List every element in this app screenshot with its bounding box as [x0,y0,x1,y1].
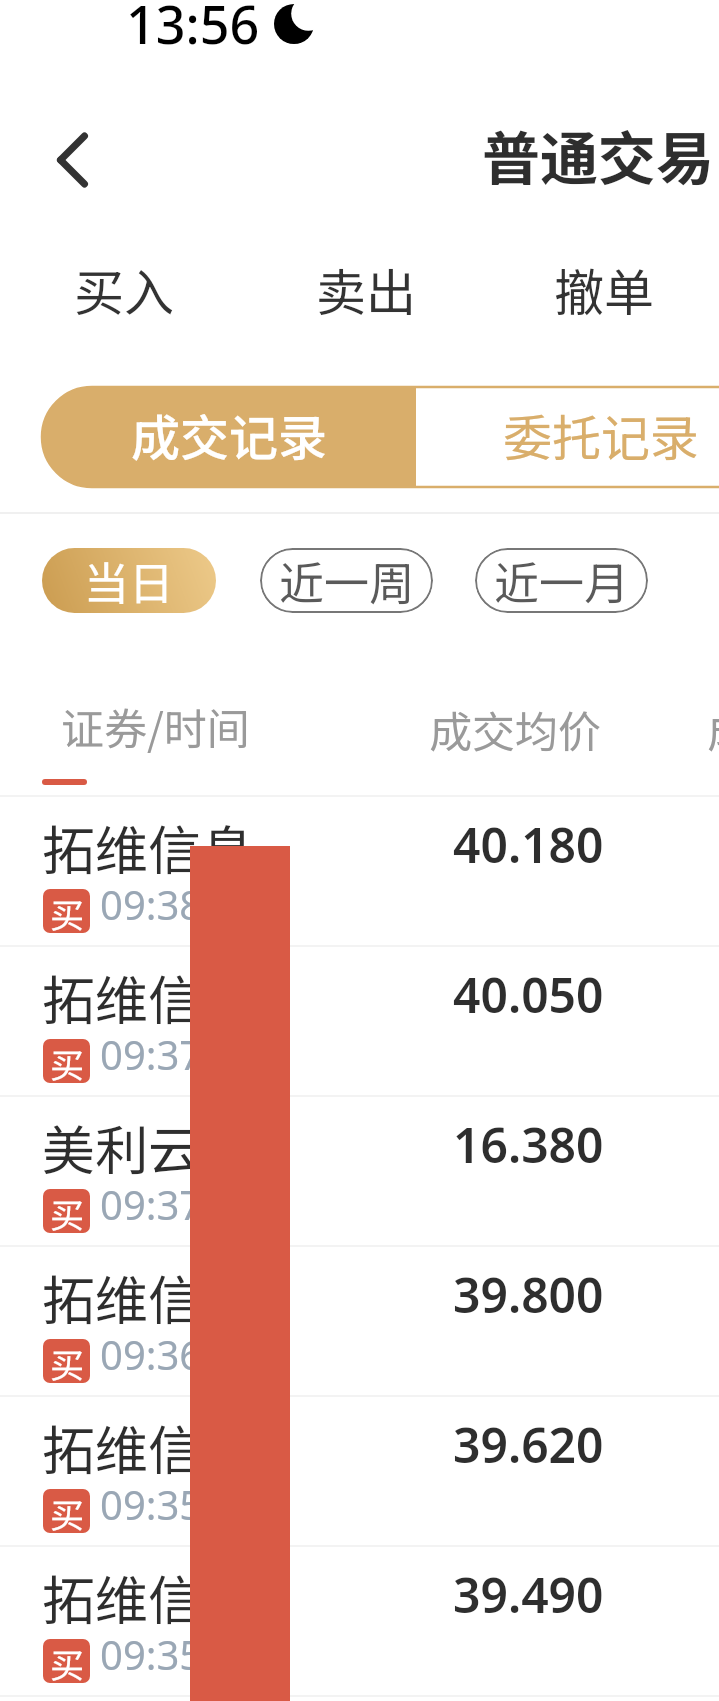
staticText: 09:35:12 [100,1627,259,1681]
button[interactable]: 拓维信息 [0,797,719,945]
button[interactable]: 拓维信息 [0,1397,719,1545]
button[interactable]: 拓维信息 [0,947,719,1095]
staticText: 09:37:10 [100,1177,259,1231]
button[interactable]: 拓维信息 [0,1247,719,1395]
staticText: 13:56 [126,0,260,59]
staticText: 证券/时间 [61,695,250,757]
staticText: 39.620 [453,1412,604,1477]
button[interactable]: 撤单 [536,248,668,338]
staticText: 买入 [74,253,174,325]
button[interactable]: 近一周 [260,548,433,613]
staticText: 39.800 [453,1262,604,1327]
staticText: 09:36:42 [100,1327,259,1381]
staticText: 成交量 [707,698,719,760]
staticText: 买 [50,1489,84,1533]
staticText: 16.380 [453,1112,604,1177]
staticText: 拓维信息 [42,1259,254,1336]
staticText: 拓维信息 [42,1559,254,1636]
staticText: 买 [50,1039,84,1083]
staticText: 成交均价 [429,698,601,760]
button[interactable]: 委托记录 [416,387,719,487]
staticText: 09:38:21 [100,877,259,931]
button[interactable]: 成交记录 [42,387,416,487]
staticText: 买 [50,889,84,933]
staticText: 40.050 [453,962,604,1027]
staticText: 买 [50,1639,84,1683]
staticText: 卖出 [316,253,416,325]
staticText: 拓维信息 [42,959,254,1036]
staticText: 普通交易 [482,113,715,197]
button[interactable]: 买入 [56,248,188,338]
button[interactable]: 拓维信息 [0,1547,719,1695]
staticText: 09:35:58 [100,1477,259,1531]
button[interactable]: 卖出 [298,248,430,338]
staticText: 39.490 [453,1562,604,1627]
staticText: 09:37:55 [100,1027,259,1081]
button[interactable]: 当日 [42,548,216,613]
staticText: 近一周 [279,548,415,613]
button[interactable]: 美利云 [0,1097,719,1245]
button[interactable]: Back [33,122,111,198]
staticText: 拓维信息 [42,1409,254,1486]
staticText: 撤单 [554,253,654,325]
staticText: 成交记录 [131,399,328,470]
staticText: 拓维信息 [42,809,254,886]
button[interactable]: 近一月 [475,548,648,613]
staticText: 买 [50,1189,84,1233]
staticText: 委托记录 [503,399,700,470]
staticText: 40.180 [453,812,604,877]
staticText: 买 [50,1339,84,1383]
staticText: 美利云 [42,1109,201,1186]
staticText: 当日 [84,548,175,613]
staticText: 近一月 [494,548,630,613]
